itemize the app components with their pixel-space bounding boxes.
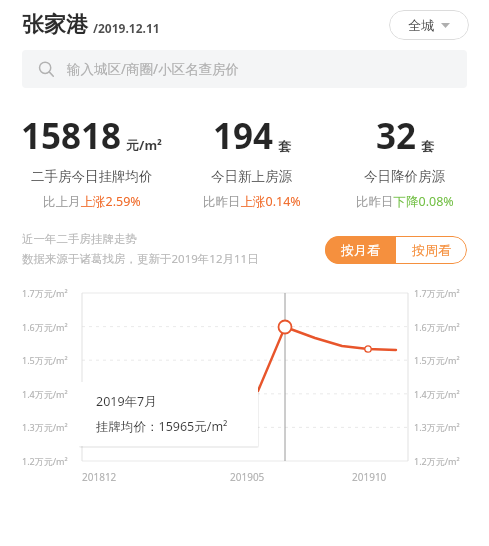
- staticText: 按周看: [412, 242, 451, 258]
- staticText: 1.7万元/m²: [414, 287, 460, 299]
- staticText: 张家港: [22, 11, 88, 39]
- staticText: 挂牌均价：15965元/m²: [96, 418, 228, 435]
- staticText: 比昨日下降0.08%: [356, 193, 454, 210]
- staticText: 元/m²: [126, 136, 162, 154]
- staticText: 1.6万元/m²: [22, 321, 68, 333]
- button[interactable]: 194: [175, 112, 328, 210]
- staticText: 套: [421, 138, 434, 154]
- button[interactable]: 按月看: [325, 236, 396, 264]
- staticText: 比上月上涨2.59%: [43, 193, 141, 210]
- staticText: 15818: [21, 112, 122, 160]
- button[interactable]: Search: [22, 50, 467, 88]
- staticText: 1.5万元/m²: [22, 354, 68, 366]
- staticText: 今日新上房源: [211, 168, 292, 185]
- staticText: 比昨日上涨0.14%: [203, 193, 301, 210]
- staticText: 1.7万元/m²: [22, 287, 68, 299]
- staticText: 全城: [408, 17, 434, 33]
- button[interactable]: 32: [328, 112, 481, 210]
- staticText: 201812: [82, 470, 117, 484]
- staticText: 今日降价房源: [364, 168, 445, 185]
- staticText: 2019年7月: [96, 393, 157, 410]
- staticText: 201905: [230, 470, 265, 484]
- other: Search: [38, 61, 55, 78]
- button[interactable]: 全城: [389, 10, 469, 40]
- staticText: 套: [278, 138, 291, 154]
- staticText: 1.2万元/m²: [414, 455, 460, 467]
- staticText: 1.4万元/m²: [414, 388, 460, 400]
- staticText: 输入城区/商圈/小区名查房价: [67, 60, 240, 78]
- staticText: 1.2万元/m²: [22, 455, 68, 467]
- staticText: 32: [376, 112, 417, 160]
- staticText: 1.3万元/m²: [414, 421, 460, 433]
- staticText: 数据来源于诸葛找房，更新于2019年12月11日: [22, 251, 259, 267]
- staticText: 201910: [352, 470, 387, 484]
- staticText: 194: [213, 112, 274, 160]
- staticText: 1.5万元/m²: [414, 354, 460, 366]
- staticText: 近一年二手房挂牌走势: [22, 232, 137, 246]
- staticText: 1.4万元/m²: [22, 388, 68, 400]
- staticText: 二手房今日挂牌均价: [31, 168, 153, 185]
- staticText: 按月看: [341, 242, 380, 258]
- button[interactable]: 按周看: [396, 236, 467, 264]
- staticText: 1.3万元/m²: [22, 421, 68, 433]
- button[interactable]: 15818: [8, 112, 175, 210]
- staticText: 1.6万元/m²: [414, 321, 460, 333]
- staticText: /2019.12.11: [93, 20, 160, 36]
